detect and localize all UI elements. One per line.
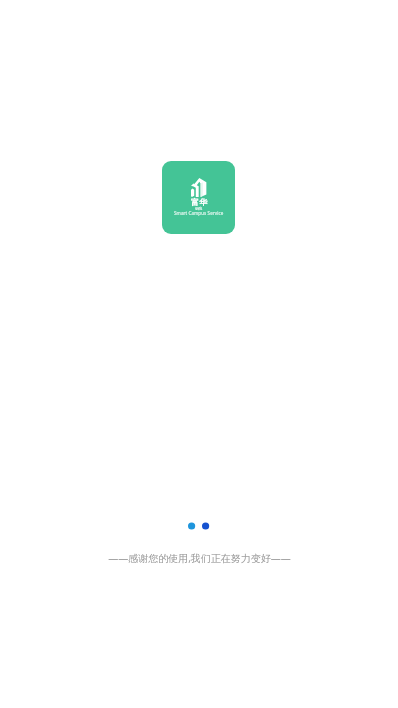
staticText: 富华 <box>191 197 207 207</box>
staticText: ——感谢您的使用,我们正在努力变好—— <box>108 551 291 565</box>
other: Loading <box>186 520 212 532</box>
button[interactable]: 富华学院 Smart Campus Service <box>162 161 235 234</box>
staticText: 学院 <box>195 207 203 212</box>
staticText: Smart Campus Service <box>174 210 224 216</box>
